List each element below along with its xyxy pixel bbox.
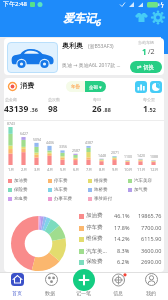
staticText: .52 [148, 106, 156, 113]
staticText: 1100 [124, 154, 133, 159]
staticText: 10月 [124, 167, 133, 172]
staticText: 下午2:48 [3, 0, 27, 8]
staticText: 2071 [111, 150, 120, 155]
staticText: 奥利奥 [62, 41, 83, 50]
staticText: 维保费 [86, 235, 103, 242]
staticText: 充电费 [14, 196, 28, 202]
staticText: 2587 [72, 148, 81, 153]
staticText: 43139 [4, 103, 29, 115]
button[interactable] [137, 272, 164, 300]
staticText: 事故赔付 [94, 196, 112, 202]
staticText: 98 [48, 103, 58, 115]
staticText: 6115.90 [141, 235, 162, 242]
staticText: 6月 [73, 167, 80, 172]
staticText: 加油费 [86, 212, 103, 219]
staticText: 26 [92, 103, 102, 115]
staticText: 17.8% [114, 224, 130, 231]
staticText: 4406 [46, 140, 55, 145]
staticText: 停车费 [86, 224, 103, 231]
staticText: 维保费 [94, 178, 108, 184]
staticText: 办事花费 [54, 196, 72, 202]
staticText: 1448 [98, 153, 107, 158]
staticText: 2月 [21, 167, 28, 172]
staticText: 9月 [112, 167, 119, 172]
staticText: 11月 [137, 167, 146, 172]
staticText: (浙B53AF3) [88, 43, 114, 50]
staticText: 1 [143, 103, 148, 115]
staticText: 5月 [60, 167, 67, 172]
staticText: 信息 [113, 290, 123, 296]
staticText: 奥迪 → 奥迪A6L 2017款 … [62, 62, 121, 69]
staticText: 1 [142, 46, 147, 57]
staticText: 汽车美… [86, 247, 107, 255]
staticText: 汽车美容 [134, 178, 152, 184]
staticText: 46.1% [114, 212, 130, 219]
staticText: /2 [148, 47, 155, 57]
staticText: 6427 [20, 131, 29, 136]
staticText: ⇌ 切换 [137, 63, 155, 71]
staticText: 14.2% [114, 235, 130, 242]
staticText: 1088 [150, 154, 159, 159]
staticText: 1420 [137, 153, 146, 158]
button[interactable] [73, 269, 95, 291]
staticText: .36 [30, 106, 38, 113]
staticText: 我的 [146, 290, 156, 296]
button[interactable]: ⇌ 切换 [130, 61, 162, 73]
staticText: 4月 [47, 167, 54, 172]
staticText: 记一笔 [76, 290, 91, 296]
staticText: 19865.76 [138, 212, 162, 219]
staticText: 5094 [33, 137, 42, 142]
staticText: 首页 [12, 290, 22, 296]
staticText: 4387 [85, 140, 94, 145]
button[interactable] [135, 81, 162, 93]
staticText: 6.2% [117, 258, 130, 265]
staticText: 数据 [45, 290, 55, 296]
staticText: 8743 [7, 121, 16, 126]
button[interactable] [4, 272, 32, 300]
staticText: 加气费 [134, 187, 148, 193]
staticText: 年份 [71, 84, 80, 90]
staticText: 每日 [93, 97, 101, 102]
staticText: 1月 [8, 167, 15, 172]
staticText: 保险费 [14, 187, 28, 193]
staticText: 3356 [59, 144, 68, 149]
staticText: 2690.00 [141, 258, 162, 265]
button[interactable] [37, 272, 64, 300]
button[interactable] [104, 272, 131, 300]
staticText: 12月 [150, 167, 159, 172]
staticText: 加油费 [14, 178, 28, 184]
staticText: 3600.00 [141, 247, 162, 254]
staticText: 7700.00 [141, 224, 162, 231]
staticText: 洗车费 [54, 187, 68, 193]
staticText: 总次数 [48, 97, 60, 102]
button[interactable]: 年份 [66, 81, 106, 92]
staticText: 消费 [20, 81, 34, 90]
button[interactable] [4, 38, 164, 75]
staticText: 8月 [99, 167, 106, 172]
staticText: 总金额 [5, 97, 17, 102]
staticText: 7月 [86, 167, 93, 172]
button[interactable] [135, 11, 165, 24]
staticText: 停车费 [54, 178, 68, 184]
staticText: 8.3% [117, 247, 130, 254]
staticText: .88 [103, 106, 111, 113]
staticText: 全部 ▾ [89, 84, 102, 90]
staticText: 3月 [34, 167, 41, 172]
staticText: 每公里 [143, 97, 155, 102]
staticText: 保险费 [86, 258, 103, 265]
staticText: 路桥费 [94, 187, 108, 193]
staticText: 当前车辆 [138, 40, 154, 45]
